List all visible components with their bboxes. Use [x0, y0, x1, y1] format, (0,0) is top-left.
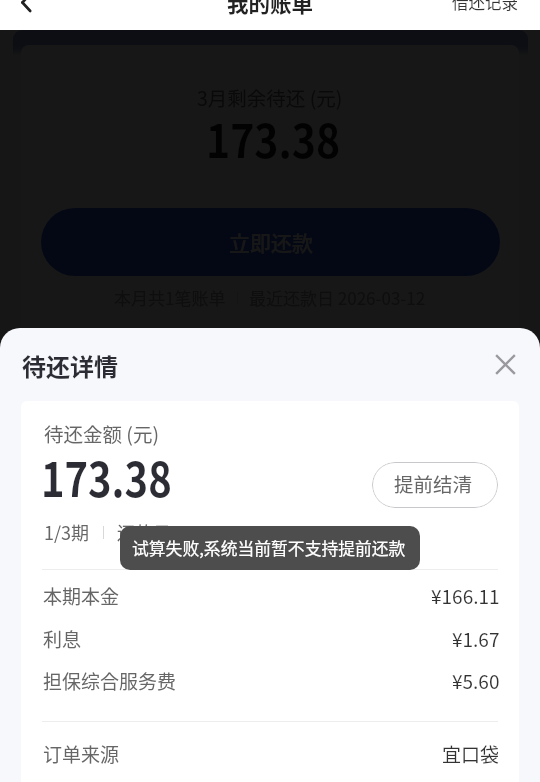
staticText: 待还金额 (元): [44, 419, 160, 447]
staticText: 利息: [43, 625, 82, 653]
button[interactable]: Back: [8, 0, 44, 17]
staticText: 待还详情: [22, 348, 118, 383]
staticText: 173.38: [41, 442, 172, 511]
button[interactable]: 借还记录: [452, 0, 518, 14]
button[interactable]: 担保综合服务费: [21, 665, 519, 697]
staticText: 宜口袋: [442, 740, 500, 768]
staticText: 提前结清: [394, 469, 473, 497]
button[interactable]: 利息: [21, 623, 519, 655]
staticText: 还款日 2026-03-12: [117, 519, 268, 545]
button[interactable]: 立即还款: [41, 208, 500, 276]
staticText: ¥1.67: [452, 625, 500, 653]
staticText: 最近还款日 2026-03-12: [249, 285, 426, 310]
staticText: ¥166.11: [431, 582, 500, 610]
staticText: 3月剩余待还 (元): [197, 83, 343, 111]
button[interactable]: 订单来源: [21, 738, 519, 770]
staticText: 1/3期: [44, 519, 90, 545]
staticText: ¥5.60: [452, 667, 500, 695]
button[interactable]: 提前结清: [372, 462, 498, 508]
button[interactable]: 本期本金: [21, 580, 519, 612]
staticText: 担保综合服务费: [43, 667, 177, 695]
staticText: 本期本金: [43, 582, 120, 610]
staticText: 试算失败,系统当前暂不支持提前还款: [132, 536, 406, 560]
staticText: 立即还款: [229, 227, 313, 257]
staticText: 本月共1笔账单: [114, 285, 226, 310]
staticText: 我的账单: [227, 0, 314, 17]
staticText: 173.38: [206, 105, 341, 171]
button[interactable]: Close: [489, 348, 521, 380]
staticText: 订单来源: [43, 740, 120, 768]
